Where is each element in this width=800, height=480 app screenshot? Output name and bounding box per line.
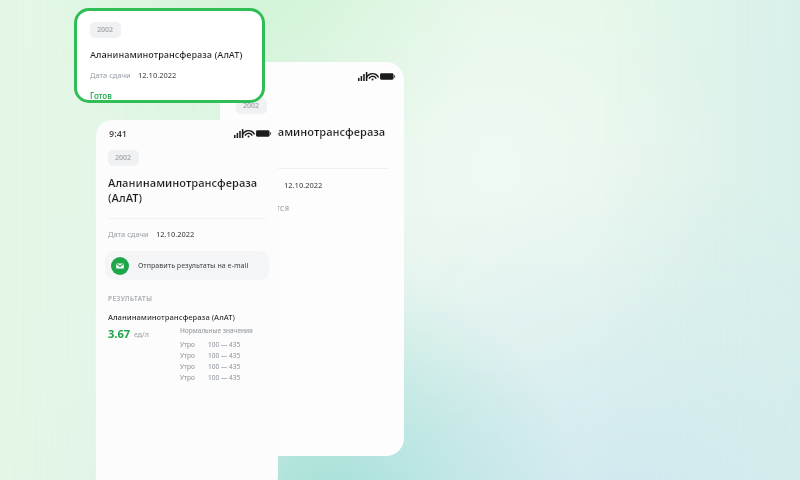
staticText: Дата сдачи: [108, 229, 149, 239]
staticText: Аланинаминотрансфераза (АлАТ): [108, 312, 235, 322]
staticText: 12.10.2022: [138, 70, 177, 80]
staticText: Аланинаминотрансфераза (АлАТ): [236, 124, 386, 154]
staticText: Утро: [180, 362, 208, 371]
staticText: 100 — 435: [208, 373, 241, 382]
staticText: Нормальные значения: [180, 326, 253, 335]
staticText: РЕЗУЛЬТАТЫ: [108, 294, 153, 303]
button[interactable]: 2002: [108, 150, 139, 166]
staticText: 2002: [115, 153, 132, 163]
staticText: 2002: [97, 25, 114, 35]
staticText: Дата сдачи: [90, 70, 131, 80]
staticText: 100 — 435: [208, 340, 241, 349]
button[interactable]: Отправить результаты на e-mail: [105, 251, 269, 280]
staticText: Дата сдачи: [236, 180, 277, 190]
staticText: 100 — 435: [208, 362, 241, 371]
staticText: 100 — 435: [208, 351, 241, 360]
staticText: 12.10.2022: [156, 229, 195, 239]
staticText: 2002: [243, 101, 260, 111]
staticText: Утро: [180, 351, 208, 360]
staticText: 9:41: [109, 127, 127, 139]
staticText: Утро: [180, 373, 208, 382]
other: Signal, Wi-Fi and battery status: [358, 72, 390, 81]
staticText: 3.67: [108, 326, 130, 341]
staticText: Отправить результаты на e-mail: [138, 261, 249, 271]
other: Signal, Wi-Fi and battery status: [234, 129, 266, 138]
button[interactable]: 2002: [74, 8, 265, 103]
staticText: 12.10.2022: [284, 180, 323, 190]
staticText: ВЫПОЛНЯЕТСЯ: [236, 204, 290, 213]
staticText: ед/л: [134, 330, 149, 340]
staticText: Аланинаминотрансфераза (АлАТ): [108, 175, 258, 205]
staticText: Утро: [180, 340, 208, 349]
staticText: Аланинаминотрансфераза (АлАТ): [90, 48, 243, 60]
staticText: Готов: [90, 90, 112, 100]
